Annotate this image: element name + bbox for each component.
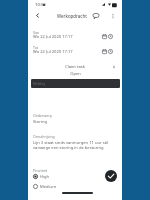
- button[interactable]: Medium: [28, 182, 122, 191]
- button[interactable]: Tot: [28, 44, 122, 59]
- staticText: Lijn 3 staat sinds vanmorgen 11 uur stil…: [33, 140, 109, 150]
- staticText: Van: [33, 30, 40, 35]
- button[interactable]: Back: [31, 9, 44, 22]
- staticText: Tot: [33, 45, 39, 50]
- staticText: Storing: [33, 119, 47, 125]
- button[interactable]: Claim task: [28, 63, 122, 71]
- staticText: Omschrijving: [33, 134, 55, 139]
- button[interactable]: More options: [108, 11, 118, 21]
- button[interactable]: Info: [111, 64, 116, 69]
- staticText: Open: [70, 71, 81, 77]
- staticText: Melding: [33, 82, 46, 86]
- button[interactable]: Open: [28, 70, 122, 78]
- staticText: Claim task: [65, 64, 85, 70]
- button[interactable]: Melding: [31, 79, 120, 88]
- button[interactable]: Confirm: [105, 170, 117, 182]
- button[interactable]: High: [28, 172, 122, 181]
- button[interactable]: Messages: [91, 11, 101, 21]
- staticText: High: [40, 174, 50, 180]
- staticText: Prioriteit: [33, 168, 48, 173]
- staticText: Onderwerp: [33, 113, 52, 118]
- button[interactable]: Van: [28, 29, 122, 44]
- staticText: Wo 22 Jul 2020 17:17: [33, 34, 73, 40]
- staticText: Wo 22 Jul 2020 17:17: [33, 49, 73, 55]
- staticText: Werkopdracht: [57, 13, 87, 19]
- staticText: 10:50: [35, 2, 46, 8]
- staticText: Medium: [40, 184, 56, 190]
